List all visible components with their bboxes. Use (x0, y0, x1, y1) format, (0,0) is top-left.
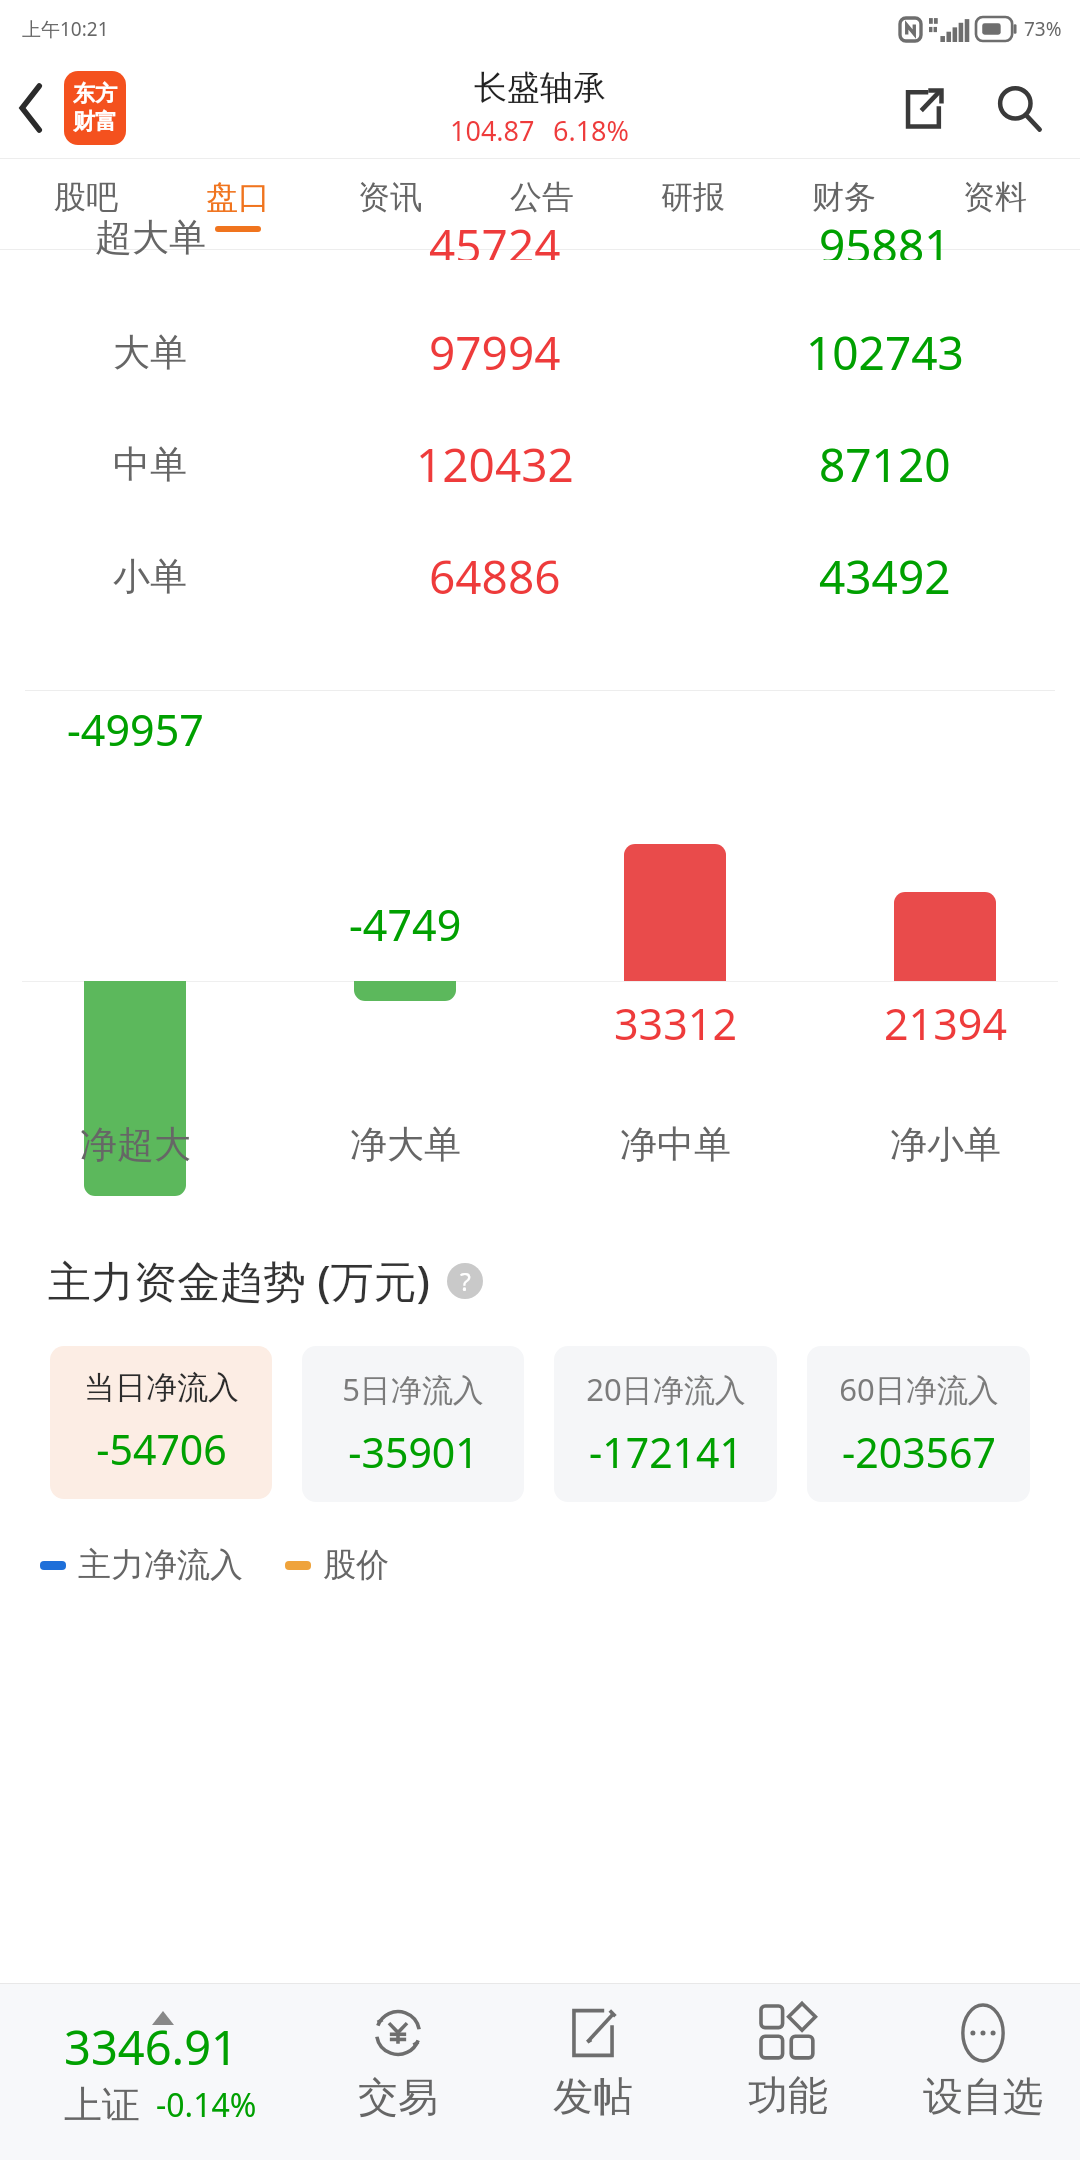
staticText: 64886 (429, 545, 561, 608)
staticText: 上午10:21 (22, 16, 109, 42)
staticText: 股吧 (54, 177, 118, 217)
staticText: -203567 (842, 1424, 996, 1480)
staticText: 财务 (812, 177, 876, 217)
staticText: -172141 (589, 1424, 743, 1480)
button[interactable]: 20日净流入 (554, 1346, 777, 1502)
staticText: 交易 (358, 2072, 438, 2122)
staticText: 104.87 (450, 112, 535, 149)
button[interactable]: Search (982, 66, 1056, 150)
staticText: 33312 (614, 994, 737, 1053)
staticText: 盘口 (206, 177, 270, 217)
staticText: 发帖 (553, 2071, 633, 2121)
staticText: 97994 (429, 321, 561, 384)
staticText: 43492 (819, 545, 951, 608)
staticText: 主力净流入 (78, 1544, 243, 1586)
button[interactable]: 资讯 (314, 159, 466, 249)
button[interactable]: 设自选 (885, 1983, 1080, 2160)
button[interactable]: Help (445, 1261, 485, 1301)
button[interactable]: 功能 (690, 1983, 885, 2160)
staticText: -35901 (348, 1424, 479, 1480)
staticText: 60日净流入 (839, 1368, 999, 1410)
button[interactable]: 当日净流入 (50, 1346, 272, 1499)
staticText: 功能 (748, 2070, 828, 2120)
staticText: -0.14% (156, 2083, 257, 2127)
button[interactable]: 盘口 (162, 159, 314, 249)
button[interactable]: 3346.91 (0, 1983, 300, 2160)
staticText: 中单 (113, 441, 187, 488)
staticText: 主力资金趋势 (万元) (48, 1251, 431, 1310)
staticText: 财富 (73, 108, 117, 136)
staticText: 87120 (819, 433, 951, 496)
staticText: 股价 (323, 1544, 389, 1586)
staticText: 95881 (819, 214, 951, 260)
staticText: 120432 (416, 433, 574, 496)
button[interactable]: 公告 (466, 159, 617, 249)
staticText: 超大单 (95, 214, 206, 260)
staticText: 20日净流入 (586, 1368, 746, 1410)
staticText: 5日净流入 (342, 1368, 484, 1410)
staticText: 当日净流入 (84, 1368, 239, 1407)
staticText: 3346.91 (64, 2015, 238, 2079)
button[interactable]: 60日净流入 (807, 1346, 1030, 1502)
staticText: 净超大 (80, 1121, 191, 1168)
staticText: 73% (1024, 16, 1062, 42)
button[interactable]: 5日净流入 (302, 1346, 524, 1502)
staticText: 21394 (884, 994, 1007, 1053)
staticText: 45724 (429, 214, 561, 260)
staticText: ? (460, 1264, 471, 1298)
button[interactable]: Back (0, 58, 64, 158)
staticText: 资料 (963, 177, 1027, 217)
staticText: 长盛轴承 (474, 67, 606, 109)
staticText: 大单 (113, 329, 187, 376)
button[interactable]: 股吧 (10, 159, 162, 249)
staticText: 6.18% (553, 112, 630, 149)
button[interactable]: 财务 (768, 159, 919, 249)
staticText: 设自选 (923, 2071, 1043, 2121)
button[interactable]: 发帖 (495, 1983, 690, 2160)
button[interactable]: 资料 (919, 159, 1070, 249)
button[interactable]: Share (886, 66, 960, 150)
staticText: 东方 (73, 80, 117, 108)
staticText: 小单 (113, 553, 187, 600)
staticText: 研报 (661, 177, 725, 217)
staticText: 净中单 (620, 1121, 731, 1168)
staticText: 净大单 (350, 1121, 461, 1168)
button[interactable]: 交易 (300, 1983, 495, 2160)
staticText: -54706 (96, 1421, 227, 1477)
staticText: -4749 (349, 895, 462, 954)
button[interactable]: 东方 (64, 71, 126, 145)
staticText: 净小单 (890, 1121, 1001, 1168)
button[interactable]: 研报 (617, 159, 768, 249)
staticText: 公告 (510, 177, 574, 217)
staticText: 102743 (806, 321, 964, 384)
staticText: -49957 (67, 700, 204, 759)
staticText: 上证 (64, 2081, 140, 2129)
staticText: 资讯 (358, 177, 422, 217)
